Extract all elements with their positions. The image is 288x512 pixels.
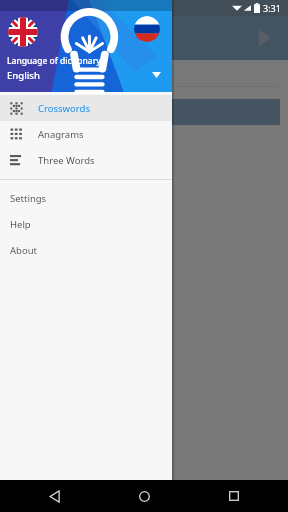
button[interactable]: SEARCH: [8, 99, 280, 125]
staticText: Language of dictionary: [7, 55, 101, 67]
button[interactable]: Three Words: [0, 147, 172, 173]
button[interactable]: Change language: [148, 67, 164, 83]
button[interactable]: Help: [0, 211, 172, 237]
staticText: Anagrams: [38, 128, 84, 141]
staticText: English: [7, 69, 40, 82]
staticText: Three Words: [38, 154, 95, 167]
button[interactable]: Russian: [134, 16, 160, 42]
button[interactable]: Play: [250, 24, 278, 52]
button[interactable]: Back: [42, 484, 66, 508]
button[interactable]: Home: [132, 484, 156, 508]
staticText: Settings: [10, 192, 47, 205]
staticText: 3:31: [263, 2, 281, 14]
staticText: About: [10, 244, 37, 257]
button[interactable]: Settings: [0, 185, 172, 211]
button[interactable]: About: [0, 237, 172, 263]
button[interactable]: Recent apps: [222, 484, 246, 508]
button[interactable]: English: [8, 17, 38, 47]
staticText: Crosswords: [38, 102, 90, 115]
button[interactable]: Crosswords: [0, 95, 172, 121]
button[interactable]: English: [0, 0, 172, 92]
button[interactable]: Anagrams: [0, 121, 172, 147]
staticText: Help: [10, 218, 31, 231]
